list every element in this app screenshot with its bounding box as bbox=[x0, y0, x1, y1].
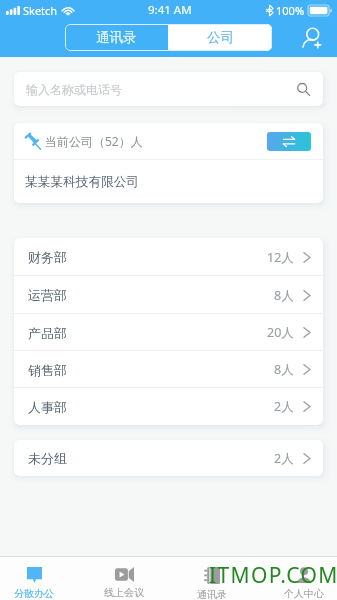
staticText: 9:41 AM bbox=[148, 2, 192, 18]
staticText: 某某某科技有限公司 bbox=[25, 174, 140, 190]
staticText: 未分组 bbox=[28, 450, 67, 466]
staticText: Sketch bbox=[23, 3, 58, 18]
button[interactable]: 财务部 bbox=[28, 238, 311, 276]
staticText: 100% bbox=[276, 3, 305, 18]
button[interactable]: 未分组 bbox=[28, 440, 311, 476]
staticText: 销售部 bbox=[28, 362, 67, 378]
staticText: 2人 bbox=[274, 398, 294, 415]
staticText: 当前公司（52）人 bbox=[45, 133, 143, 149]
button[interactable]: 分散办公 bbox=[0, 557, 78, 600]
button[interactable]: 输入名称或电话号 bbox=[14, 72, 323, 106]
staticText: 运营部 bbox=[28, 287, 67, 303]
button[interactable]: 线上会议 bbox=[80, 557, 168, 600]
staticText: 产品部 bbox=[28, 325, 67, 341]
staticText: 通讯录 bbox=[197, 588, 227, 600]
staticText: 个人中心 bbox=[284, 587, 324, 600]
staticText: 人事部 bbox=[28, 399, 67, 415]
staticText: 通讯录 bbox=[96, 29, 137, 46]
button[interactable]: 某某某科技有限公司 bbox=[25, 160, 312, 203]
button[interactable]: 个人中心 bbox=[260, 557, 337, 600]
staticText: 输入名称或电话号 bbox=[26, 82, 122, 97]
staticText: 8人 bbox=[274, 287, 294, 304]
staticText: 12人 bbox=[267, 249, 294, 266]
button[interactable]: 运营部 bbox=[28, 276, 311, 314]
staticText: 财务部 bbox=[28, 249, 67, 265]
button[interactable]: 销售部 bbox=[28, 351, 311, 388]
staticText: ITMOP.COM bbox=[209, 561, 337, 590]
staticText: 分散办公 bbox=[14, 587, 54, 600]
staticText: 2人 bbox=[274, 450, 294, 467]
button[interactable]: 产品部 bbox=[28, 314, 311, 351]
button[interactable]: 人事部 bbox=[28, 388, 311, 425]
staticText: 线上会议 bbox=[104, 586, 144, 599]
button[interactable]: Add contact bbox=[296, 22, 328, 54]
button[interactable]: 通讯录 bbox=[168, 557, 256, 600]
button[interactable]: Switch company bbox=[267, 132, 311, 151]
button[interactable]: 通讯录 bbox=[65, 24, 168, 51]
staticText: 20人 bbox=[267, 324, 294, 341]
staticText: 公司 bbox=[207, 29, 234, 46]
button[interactable]: 公司 bbox=[168, 24, 272, 51]
staticText: 8人 bbox=[274, 361, 294, 378]
